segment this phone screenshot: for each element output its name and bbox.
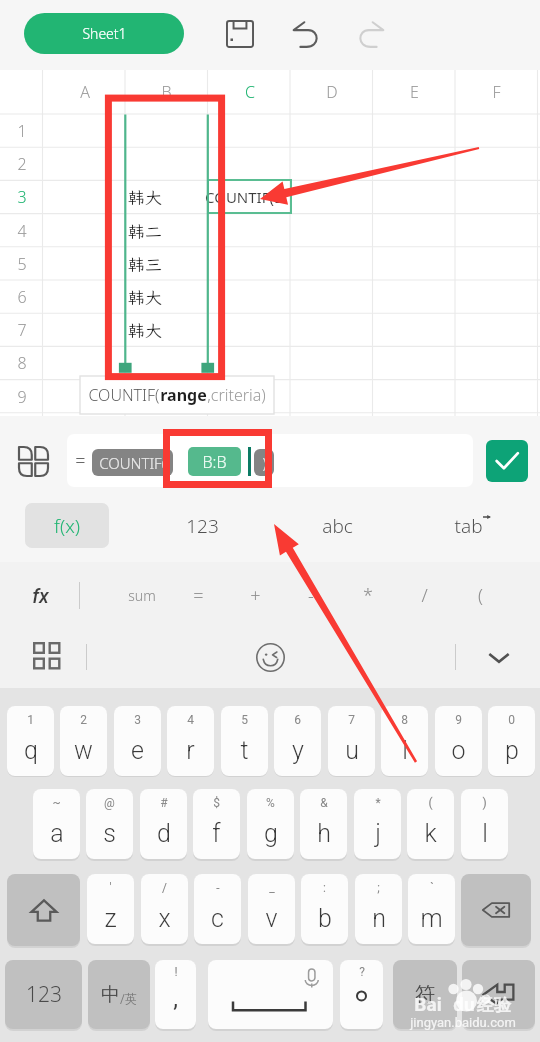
button[interactable]: Backspace [461,874,531,946]
button[interactable]: Redo [350,13,392,55]
button[interactable]: % [247,789,294,859]
button[interactable]: Functions [18,573,62,617]
staticText: 韩大 [128,286,162,308]
staticText: ) [262,453,267,473]
button[interactable]: Shift [7,874,80,946]
staticText: Bai [414,993,442,1015]
button[interactable]: $ [193,789,240,859]
button[interactable]: = [67,434,473,487]
staticText: z [104,904,117,933]
staticText: 2 [80,713,87,727]
button[interactable]: ( [407,789,454,859]
button[interactable]: 1 [7,706,54,776]
button[interactable]: abc [285,503,390,548]
staticText: a [50,819,64,848]
staticText: 8 [17,352,27,374]
staticText: 3 [17,186,27,208]
staticText: : [323,881,326,895]
staticText: 韩大 [128,319,162,341]
button[interactable]: 123 [5,960,82,1029]
button[interactable]: * [340,573,396,617]
staticText: c [211,904,224,933]
button[interactable]: ( [452,573,508,617]
button[interactable]: = [170,573,226,617]
staticText: COUNTIF(B:B) [205,187,288,207]
button[interactable]: - [283,573,339,617]
staticText: du [453,993,475,1015]
button[interactable]: Confirm [486,440,528,482]
staticText: B [161,81,172,103]
button[interactable]: Emoji [248,635,292,679]
staticText: 韩大 [128,186,162,208]
button[interactable]: 0 [488,706,535,776]
button[interactable]: ' [87,874,134,944]
staticText: 123 [186,513,219,539]
button[interactable]: 123 [150,503,255,548]
staticText: i [402,736,408,765]
button[interactable]: 5 [221,706,268,776]
button[interactable]: + [227,573,283,617]
staticText: * [363,583,373,608]
button[interactable]: 9 [435,706,482,776]
staticText: w [74,736,93,765]
button[interactable]: * [354,789,401,859]
button[interactable]: ` [408,874,455,944]
button[interactable]: & [300,789,347,859]
staticText: / [162,881,167,895]
staticText: 经验 [477,995,511,1016]
staticText: ? [359,965,365,979]
staticText: 4 [17,220,27,242]
staticText: f [212,819,221,848]
staticText: @ [104,796,115,810]
staticText: ; [377,881,380,895]
button[interactable]: : [301,874,348,944]
button[interactable]: Enter [462,960,535,1029]
button[interactable]: / [396,573,452,617]
staticText: range [160,384,207,406]
staticText: b [318,904,332,933]
staticText: _ [269,881,275,895]
staticText: q [24,736,38,765]
staticText: 6 [17,286,27,308]
button[interactable]: f(x) [25,503,109,548]
button[interactable]: ; [355,874,402,944]
button[interactable]: ~ [33,789,80,859]
button[interactable]: 符 [393,960,457,1029]
button[interactable]: 中 [88,960,150,1029]
button[interactable]: Hide keyboard [477,635,521,679]
button[interactable]: 7 [328,706,375,776]
button[interactable]: Keyboard layout [25,634,69,678]
staticText: A [80,81,90,103]
button[interactable]: Sheet1 [24,13,184,54]
button[interactable]: Cell options [11,439,55,483]
button[interactable]: ? [340,960,383,1029]
button[interactable]: Undo [285,13,327,55]
staticText: r [186,736,195,765]
staticText: F [492,81,501,103]
staticText: x [158,904,171,933]
button[interactable]: 3 [114,706,161,776]
button[interactable]: 6 [274,706,321,776]
staticText: = [193,583,204,608]
staticText: 0 [508,713,515,727]
staticText: sum [128,586,156,605]
button[interactable]: tab [420,503,525,548]
button[interactable]: _ [248,874,295,944]
button[interactable]: - [194,874,241,944]
staticText: ! [174,965,178,979]
staticText: t [240,736,249,765]
button[interactable] [208,960,333,1029]
button[interactable]: / [141,874,188,944]
button[interactable]: 2 [60,706,107,776]
button[interactable]: @ [86,789,133,859]
staticText: g [264,819,278,848]
button[interactable]: ! [155,960,196,1029]
staticText: * [375,796,381,810]
button[interactable]: 8 [381,706,428,776]
button[interactable]: ) [461,789,508,859]
button[interactable]: sum [114,573,170,617]
button[interactable]: # [140,789,187,859]
button[interactable]: Save [219,13,261,55]
staticText: - [308,583,314,608]
button[interactable]: 4 [167,706,214,776]
